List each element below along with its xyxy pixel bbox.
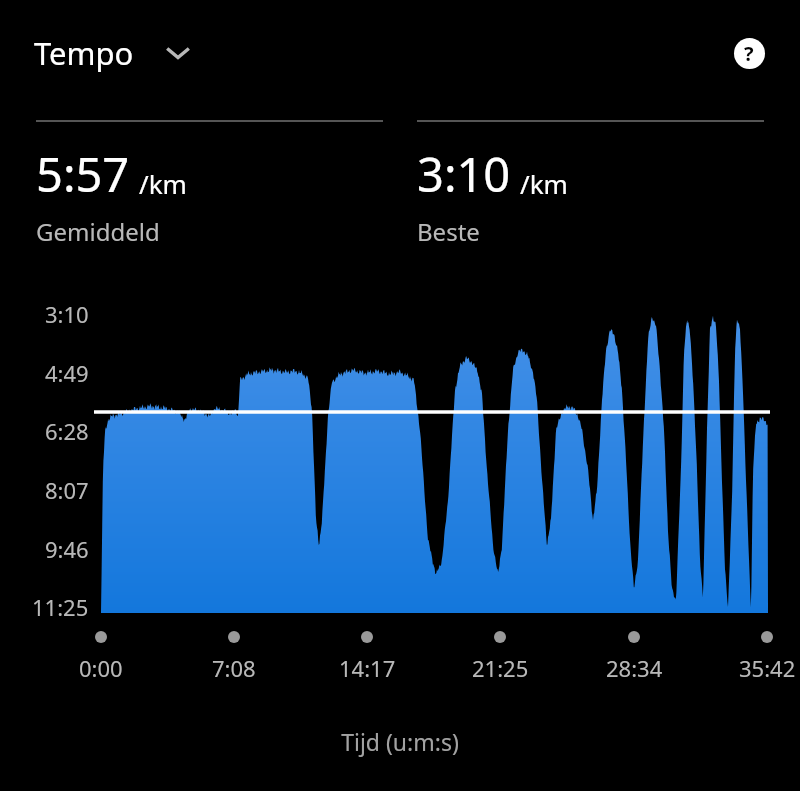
button[interactable]: 5:57 [36, 120, 383, 248]
staticText: Beste [417, 215, 480, 248]
button[interactable]: Pace chart [0, 0, 800, 791]
staticText: /km [139, 166, 187, 201]
staticText: ? [744, 40, 754, 67]
button[interactable]: Help [726, 30, 772, 76]
button[interactable]: 3:10 [417, 120, 764, 248]
staticText: 5:57 [36, 142, 130, 206]
staticText: Tempo [34, 32, 134, 74]
staticText: 7:08 [212, 653, 256, 683]
staticText: 8:07 [45, 475, 89, 505]
staticText: Gemiddeld [36, 215, 160, 248]
staticText: 3:10 [45, 299, 89, 329]
staticText: 11:25 [32, 592, 89, 622]
staticText: 21:25 [472, 653, 529, 683]
staticText: 4:49 [45, 358, 89, 388]
staticText: 35:42 [739, 653, 796, 683]
staticText: Tijd (u:m:s) [341, 726, 459, 757]
staticText: /km [520, 166, 568, 201]
button[interactable]: Tempo [26, 24, 200, 82]
staticText: 3:10 [417, 142, 511, 206]
staticText: 0:00 [79, 653, 123, 683]
staticText: 9:46 [45, 534, 89, 564]
staticText: 14:17 [339, 653, 396, 683]
staticText: 6:28 [45, 416, 89, 446]
staticText: 28:34 [606, 653, 663, 683]
